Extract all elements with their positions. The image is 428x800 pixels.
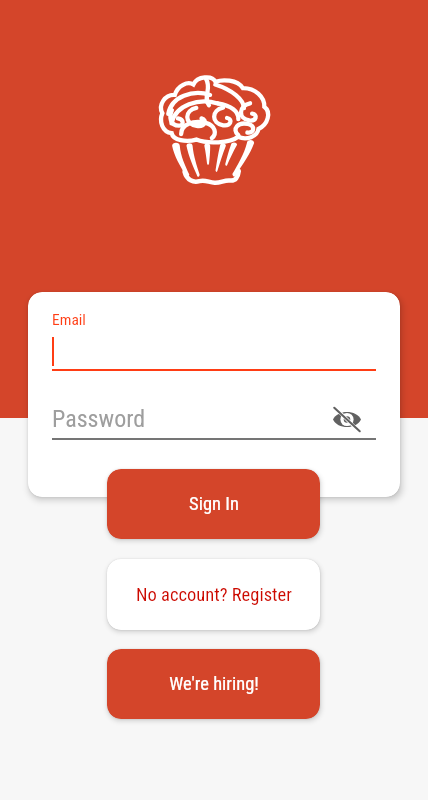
button[interactable]: Toggle password visibility [332,404,362,434]
staticText: No account? Register [136,584,292,606]
staticText: Password [52,405,146,433]
staticText: Sign In [189,493,239,515]
button[interactable]: Sign In [107,469,320,539]
staticText: We're hiring! [169,673,259,695]
button[interactable]: No account? Register [107,559,320,630]
button[interactable]: We're hiring! [107,649,320,719]
staticText: Email [52,311,86,329]
